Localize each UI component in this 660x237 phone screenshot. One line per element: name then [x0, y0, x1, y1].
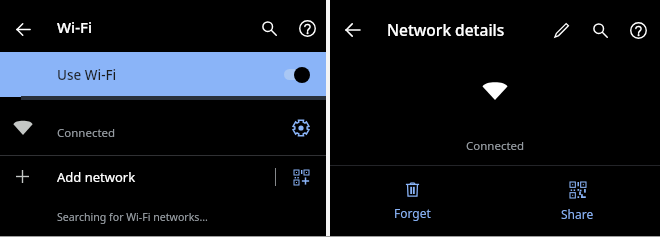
staticText: Searching for Wi-Fi networks…: [57, 210, 208, 224]
button[interactable]: Connected: [0, 96, 326, 155]
button[interactable]: Help: [619, 11, 657, 49]
staticText: Share: [561, 206, 594, 222]
staticText: Use Wi-Fi: [57, 66, 117, 84]
button[interactable]: Search: [250, 9, 288, 47]
button[interactable]: Use Wi-Fi: [0, 52, 326, 96]
staticText: Forget: [394, 205, 431, 221]
staticText: Add network: [57, 168, 136, 186]
button[interactable]: Add network via QR code: [290, 166, 312, 188]
staticText: Network details: [387, 19, 505, 40]
button[interactable]: Back: [7, 13, 39, 45]
button[interactable]: Add network: [0, 156, 326, 197]
button[interactable]: Search: [581, 11, 619, 49]
button[interactable]: Edit: [543, 11, 581, 49]
button[interactable]: Help: [288, 9, 326, 47]
button[interactable]: Network settings: [287, 114, 315, 142]
button[interactable]: Back: [337, 14, 369, 46]
button[interactable]: Forget network: [330, 166, 495, 236]
staticText: Connected: [466, 138, 525, 154]
button[interactable]: Share network: [495, 166, 660, 236]
staticText: Wi-Fi: [57, 17, 92, 37]
staticText: Connected: [57, 125, 116, 141]
